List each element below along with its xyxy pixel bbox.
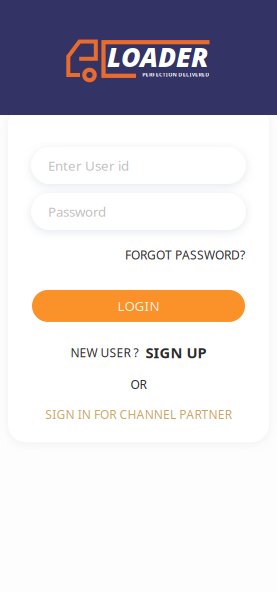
- staticText: LOADER: [107, 39, 208, 74]
- button[interactable]: Password: [31, 193, 246, 230]
- staticText: SIGN UP: [145, 343, 206, 362]
- staticText: Password: [48, 203, 106, 220]
- button[interactable]: LOGIN: [32, 290, 245, 322]
- staticText: OR: [130, 376, 146, 392]
- button[interactable]: FORGOT PASSWORD?: [125, 247, 245, 263]
- staticText: NEW USER ?: [70, 345, 138, 361]
- staticText: SIGN IN FOR CHANNEL PARTNER: [45, 406, 232, 422]
- button[interactable]: SIGN IN FOR CHANNEL PARTNER: [45, 406, 232, 422]
- staticText: FORGOT PASSWORD?: [125, 247, 245, 263]
- staticText: PERFECTION DELIVERED: [142, 71, 209, 78]
- staticText: LOGIN: [117, 297, 159, 315]
- button[interactable]: Enter User id: [31, 147, 246, 184]
- staticText: Enter User id: [48, 157, 129, 174]
- button[interactable]: SIGN UP: [145, 343, 206, 362]
